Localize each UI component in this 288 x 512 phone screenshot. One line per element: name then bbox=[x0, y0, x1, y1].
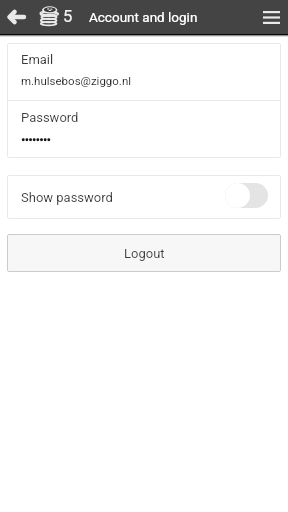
button[interactable]: Logout bbox=[7, 234, 281, 272]
button[interactable]: Menu bbox=[255, 0, 288, 34]
button[interactable]: Show password toggle bbox=[225, 183, 268, 208]
button[interactable]: Password bbox=[7, 101, 281, 158]
button[interactable]: Show password bbox=[7, 175, 281, 219]
staticText: m.hulsebos@ziggo.nl bbox=[21, 74, 132, 87]
staticText: Password bbox=[21, 110, 79, 125]
button[interactable]: Back bbox=[0, 0, 33, 34]
staticText: Logout bbox=[124, 246, 165, 261]
button[interactable]: Email bbox=[7, 43, 281, 100]
staticText: Email bbox=[21, 52, 54, 67]
staticText: Show password bbox=[21, 190, 113, 205]
staticText: 5 bbox=[63, 7, 73, 26]
staticText: Account and login bbox=[89, 9, 198, 25]
button[interactable]: Coins: 5 bbox=[39, 0, 73, 34]
